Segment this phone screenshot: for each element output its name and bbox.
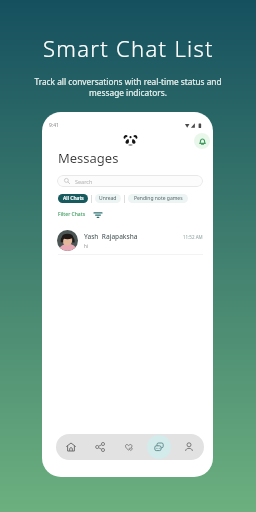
staticText: Unread (99, 195, 117, 202)
button[interactable]: Favorites (114, 434, 144, 460)
staticText: Search (75, 178, 93, 185)
staticText: 11:52 AM (183, 234, 203, 240)
button[interactable]: Share (85, 434, 114, 460)
staticText: Smart Chat List (43, 33, 214, 63)
button[interactable]: Chats (144, 434, 174, 460)
staticText: 9:41 (49, 122, 59, 129)
button[interactable]: Pending note games (128, 194, 188, 203)
staticText: Messages (58, 149, 119, 167)
button[interactable]: Notifications (194, 133, 210, 149)
button[interactable]: Profile (174, 434, 204, 460)
button[interactable]: All Chats (58, 194, 88, 203)
staticText: Filter Chats (58, 211, 86, 218)
button[interactable]: Unread (95, 194, 121, 203)
staticText: All Chats (63, 195, 84, 202)
button[interactable]: Yash Rajapaksha (57, 228, 203, 253)
button[interactable]: Filter Chats (58, 211, 102, 218)
button[interactable]: Search (57, 175, 203, 187)
staticText: Track all conversations with real-time s… (34, 76, 222, 98)
staticText: Pending note games (134, 195, 183, 202)
staticText: hi (84, 243, 88, 249)
staticText: Yash Rajapaksha (84, 232, 138, 241)
button[interactable]: Home (56, 434, 85, 460)
